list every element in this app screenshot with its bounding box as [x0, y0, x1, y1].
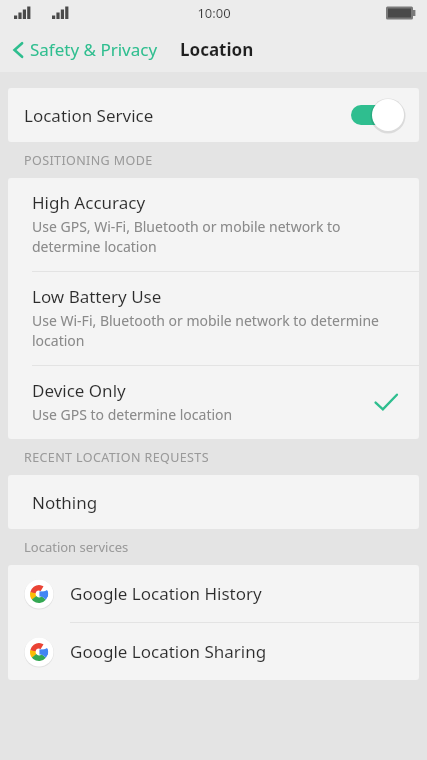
- staticText: Use GPS, Wi-Fi, Bluetooth or mobile netw…: [32, 217, 341, 256]
- button[interactable]: Google Location History: [8, 565, 419, 622]
- staticText: Use GPS to determine location: [32, 405, 233, 424]
- other: Back: [12, 40, 26, 60]
- staticText: RECENT LOCATION REQUESTS: [24, 449, 209, 466]
- button[interactable]: Nothing: [8, 475, 419, 529]
- button[interactable]: Location Service toggle: [351, 98, 405, 132]
- button[interactable]: Device Only: [8, 366, 419, 439]
- staticText: Google Location History: [70, 582, 262, 605]
- staticText: Low Battery Use: [32, 285, 162, 308]
- staticText: High Accuracy: [32, 191, 146, 214]
- staticText: Safety & Privacy: [30, 38, 158, 61]
- staticText: Google Location Sharing: [70, 640, 267, 663]
- staticText: Device Only: [32, 379, 126, 402]
- staticText: 10:00: [197, 4, 231, 22]
- staticText: POSITIONING MODE: [24, 152, 153, 169]
- button[interactable]: Back: [0, 32, 166, 67]
- button[interactable]: Google Location Sharing: [8, 623, 419, 680]
- staticText: Location services: [24, 538, 129, 556]
- staticText: Location: [180, 38, 254, 61]
- button[interactable]: Low Battery Use: [8, 272, 419, 365]
- staticText: Use Wi-Fi, Bluetooth or mobile network t…: [32, 311, 379, 350]
- staticText: Location Service: [24, 104, 154, 127]
- button[interactable]: High Accuracy: [8, 178, 419, 271]
- staticText: Nothing: [32, 491, 98, 514]
- button[interactable]: Location Service: [8, 88, 419, 142]
